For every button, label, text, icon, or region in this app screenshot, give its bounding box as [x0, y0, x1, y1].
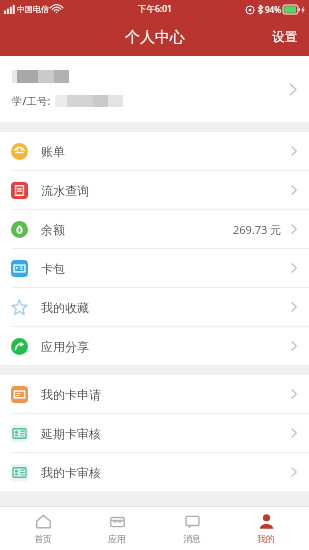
button[interactable]: 我的卡申请 [0, 375, 309, 414]
staticText: 我的收藏 [41, 300, 89, 315]
button[interactable]: 首页 [11, 507, 75, 550]
button[interactable]: 我的收藏 [0, 288, 309, 327]
staticText: 首页 [34, 533, 52, 544]
staticText: 消息 [183, 533, 201, 544]
staticText: 应用 [108, 533, 126, 544]
staticText: 设置 [272, 29, 297, 45]
button[interactable]: 卡包 [0, 249, 309, 288]
staticText: 余额 [41, 222, 65, 237]
other: 应用 [109, 513, 126, 530]
other: 首页 [35, 513, 52, 530]
button[interactable]: 账单 [0, 132, 309, 171]
staticText: 延期卡审核 [41, 426, 101, 441]
other: 我的 [258, 513, 275, 530]
other: 消息 [184, 513, 201, 530]
button[interactable]: 学/工号: [0, 56, 309, 122]
staticText: 应用分享 [41, 339, 89, 354]
staticText: 个人中心 [125, 28, 185, 47]
button[interactable]: 应用分享 [0, 327, 309, 365]
button[interactable]: 我的 [234, 507, 298, 550]
button[interactable]: 设置 [260, 21, 309, 53]
staticText: 我的卡申请 [41, 387, 101, 402]
staticText: 下午6:01 [138, 3, 172, 15]
staticText: 学/工号: [12, 94, 51, 108]
staticText: 269.73 元 [233, 222, 282, 237]
button[interactable]: 余额 [0, 210, 309, 249]
button[interactable]: 我的卡审核 [0, 453, 309, 491]
staticText: 94% [265, 4, 281, 15]
button[interactable]: 消息 [160, 507, 224, 550]
button[interactable]: 应用 [85, 507, 149, 550]
staticText: 卡包 [41, 261, 65, 276]
staticText: 我的 [257, 533, 275, 544]
staticText: 中国电信 [17, 4, 49, 14]
staticText: 账单 [41, 144, 65, 159]
button[interactable]: 延期卡审核 [0, 414, 309, 453]
staticText: 我的卡审核 [41, 465, 101, 480]
staticText: 流水查询 [41, 183, 89, 198]
button[interactable]: 流水查询 [0, 171, 309, 210]
